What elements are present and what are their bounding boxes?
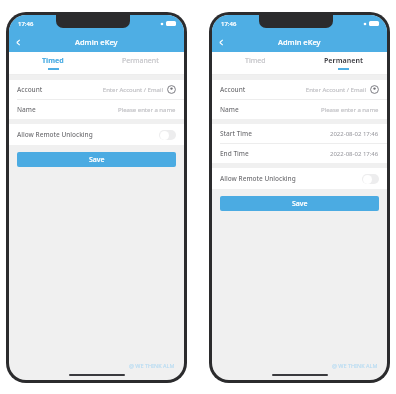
staticText: Allow Remote Unlocking [220,174,296,183]
button[interactable]: Contacts [370,85,379,94]
staticText: Account [220,85,246,94]
button[interactable]: Name [9,100,184,119]
button[interactable]: Back [212,33,230,51]
staticText: Permanent [324,56,363,66]
button[interactable]: Name [212,100,387,119]
staticText: @ WE THINK ALM [129,362,175,369]
staticText: Timed [42,56,64,66]
staticText: @ WE THINK ALM [332,362,378,369]
button[interactable]: Back [9,33,27,51]
button[interactable]: Save [220,196,379,211]
staticText: Permanent [122,56,159,66]
staticText: End Time [220,149,249,158]
button[interactable]: Permanent [96,52,184,74]
button[interactable]: Timed [212,52,299,74]
button[interactable]: Timed [9,52,96,74]
staticText: Enter Account / Email [305,86,366,94]
staticText: Enter Account / Email [102,86,163,94]
button[interactable]: Account [9,80,184,99]
button[interactable]: Save [17,152,176,167]
button[interactable]: End Time [212,144,387,163]
staticText: Start Time [220,129,253,138]
staticText: Timed [245,56,266,66]
button[interactable]: Account [212,80,387,99]
button[interactable]: Allow Remote Unlocking toggle [362,174,379,184]
staticText: Please enter a name [321,106,379,114]
button[interactable]: Contacts [167,85,176,94]
staticText: Please enter a name [118,106,176,114]
staticText: 2022-08-02 17:46 [330,150,379,158]
button[interactable]: Allow Remote Unlocking toggle [159,130,176,140]
staticText: Admin eKey [278,37,321,47]
staticText: Admin eKey [75,37,118,47]
staticText: Save [89,155,105,165]
button[interactable]: Permanent [299,52,387,74]
staticText: 17:46 [221,20,237,28]
button[interactable]: Allow Remote Unlocking [212,168,387,189]
button[interactable]: Allow Remote Unlocking [9,124,184,145]
staticText: Name [220,105,239,114]
staticText: Account [17,85,43,94]
staticText: Allow Remote Unlocking [17,130,93,139]
button[interactable]: Start Time [212,124,387,143]
staticText: 2022-08-02 17:46 [330,130,379,138]
staticText: Save [292,199,308,209]
staticText: 17:46 [18,20,34,28]
staticText: Name [17,105,36,114]
